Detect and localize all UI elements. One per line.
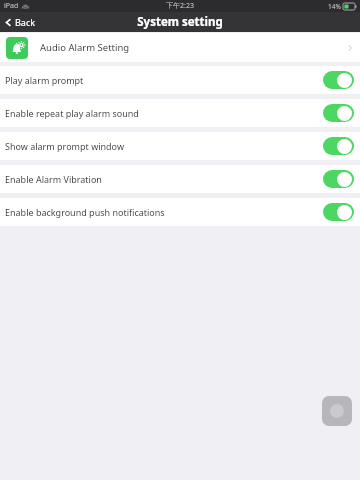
staticText: Show alarm prompt window [5,140,323,152]
button[interactable]: Toggle on [323,104,354,122]
button[interactable]: Enable background push notifications [0,198,360,226]
button[interactable]: Assistive touch [322,396,352,426]
staticText: Enable Alarm Vibration [5,173,323,185]
button[interactable]: Audio Alarm Setting [0,33,360,62]
staticText: Back [15,16,36,28]
staticText: Enable repeat play alarm sound [5,107,323,119]
button[interactable]: Toggle on [323,137,354,155]
staticText: System setting [137,14,223,30]
staticText: Enable background push notifications [5,206,323,218]
button[interactable]: Toggle on [323,203,354,221]
button[interactable]: Play alarm prompt [0,66,360,94]
staticText: 14% [328,2,341,11]
button[interactable]: Back [0,12,44,32]
staticText: iPad [4,1,19,11]
button[interactable]: Toggle on [323,71,354,89]
staticText: 下午2:23 [166,1,194,11]
button[interactable]: Enable Alarm Vibration [0,165,360,193]
button[interactable]: Toggle on [323,170,354,188]
staticText: Audio Alarm Setting [40,41,130,54]
button[interactable]: Show alarm prompt window [0,132,360,160]
button[interactable]: Enable repeat play alarm sound [0,99,360,127]
staticText: Play alarm prompt [5,74,323,86]
